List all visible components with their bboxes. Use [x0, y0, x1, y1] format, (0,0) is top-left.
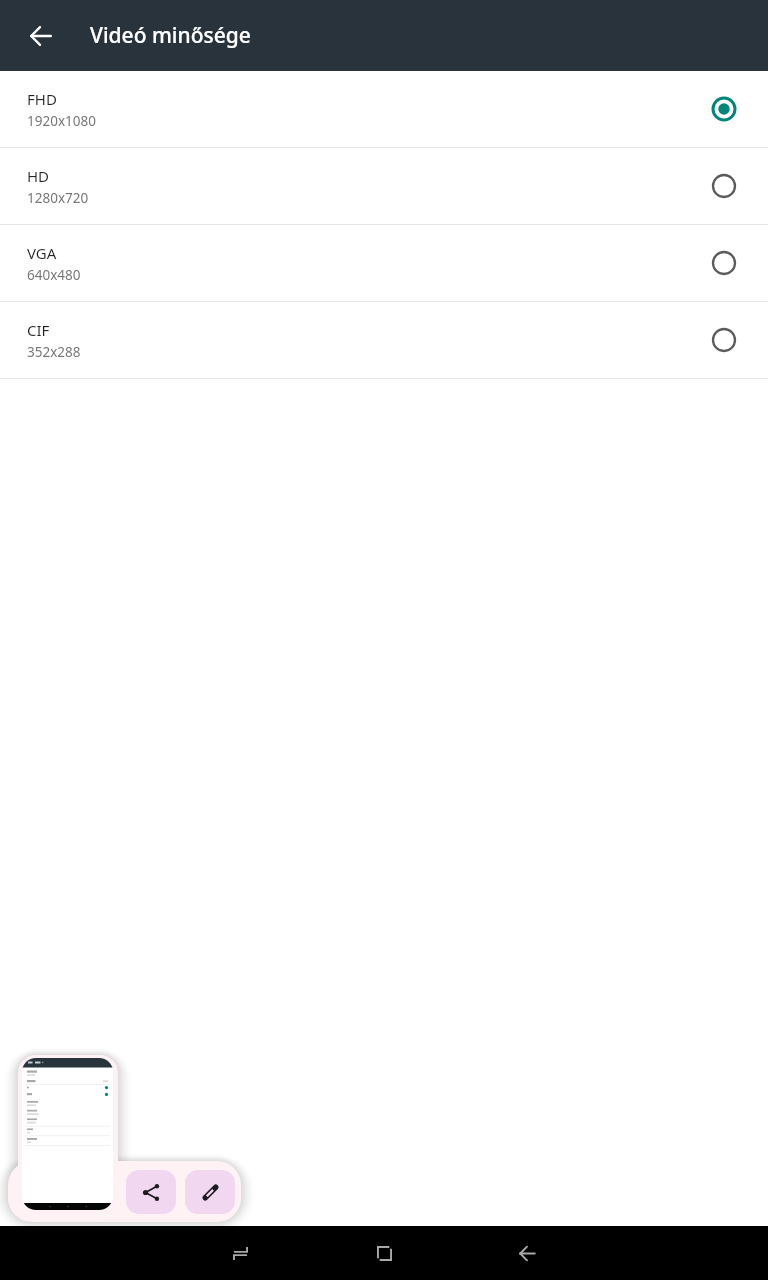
button[interactable]: FHD: [0, 71, 768, 148]
button[interactable]: Back: [497, 1226, 558, 1280]
button[interactable]: Navigate up: [0, 0, 81, 71]
staticText: 1920x1080: [27, 112, 96, 130]
staticText: 640x480: [27, 266, 81, 284]
staticText: VGA: [27, 243, 57, 263]
button[interactable]: Edit: [185, 1170, 235, 1214]
button[interactable]: Screenshot preview: [18, 1055, 118, 1213]
staticText: Videó minősége: [90, 21, 251, 50]
staticText: FHD: [27, 89, 57, 109]
staticText: 352x288: [27, 343, 81, 361]
staticText: CIF: [27, 320, 50, 340]
button[interactable]: Home: [354, 1226, 415, 1280]
staticText: HD: [27, 166, 50, 186]
button[interactable]: VGA: [0, 225, 768, 302]
button[interactable]: Share: [126, 1170, 176, 1214]
staticText: 1280x720: [27, 189, 89, 207]
button[interactable]: CIF: [0, 302, 768, 379]
button[interactable]: HD: [0, 148, 768, 225]
button[interactable]: Recent apps: [210, 1226, 271, 1280]
